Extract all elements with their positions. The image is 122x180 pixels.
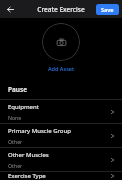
button[interactable]: Add Asset [44, 64, 79, 73]
button[interactable]: Primary Muscle Group [0, 124, 122, 147]
button[interactable]: Exercise Type [0, 172, 122, 180]
button[interactable]: Save [96, 4, 119, 15]
button[interactable]: Back [3, 2, 18, 17]
button[interactable]: Add photo [42, 23, 80, 61]
staticText: Other Muscles [8, 151, 49, 159]
staticText: Primary Muscle Group [8, 127, 71, 135]
staticText: None [8, 114, 22, 121]
button[interactable]: Other Muscles [0, 148, 122, 171]
staticText: Exercise Type [8, 172, 46, 180]
staticText: Save [101, 6, 114, 13]
staticText: Other [8, 138, 23, 145]
staticText: Equipment [8, 103, 39, 111]
staticText: Create Exercise [37, 5, 85, 14]
staticText: Other [8, 162, 23, 169]
staticText: Pause [8, 85, 27, 94]
button[interactable]: Equipment [0, 100, 122, 123]
staticText: Add Asset [48, 65, 75, 72]
